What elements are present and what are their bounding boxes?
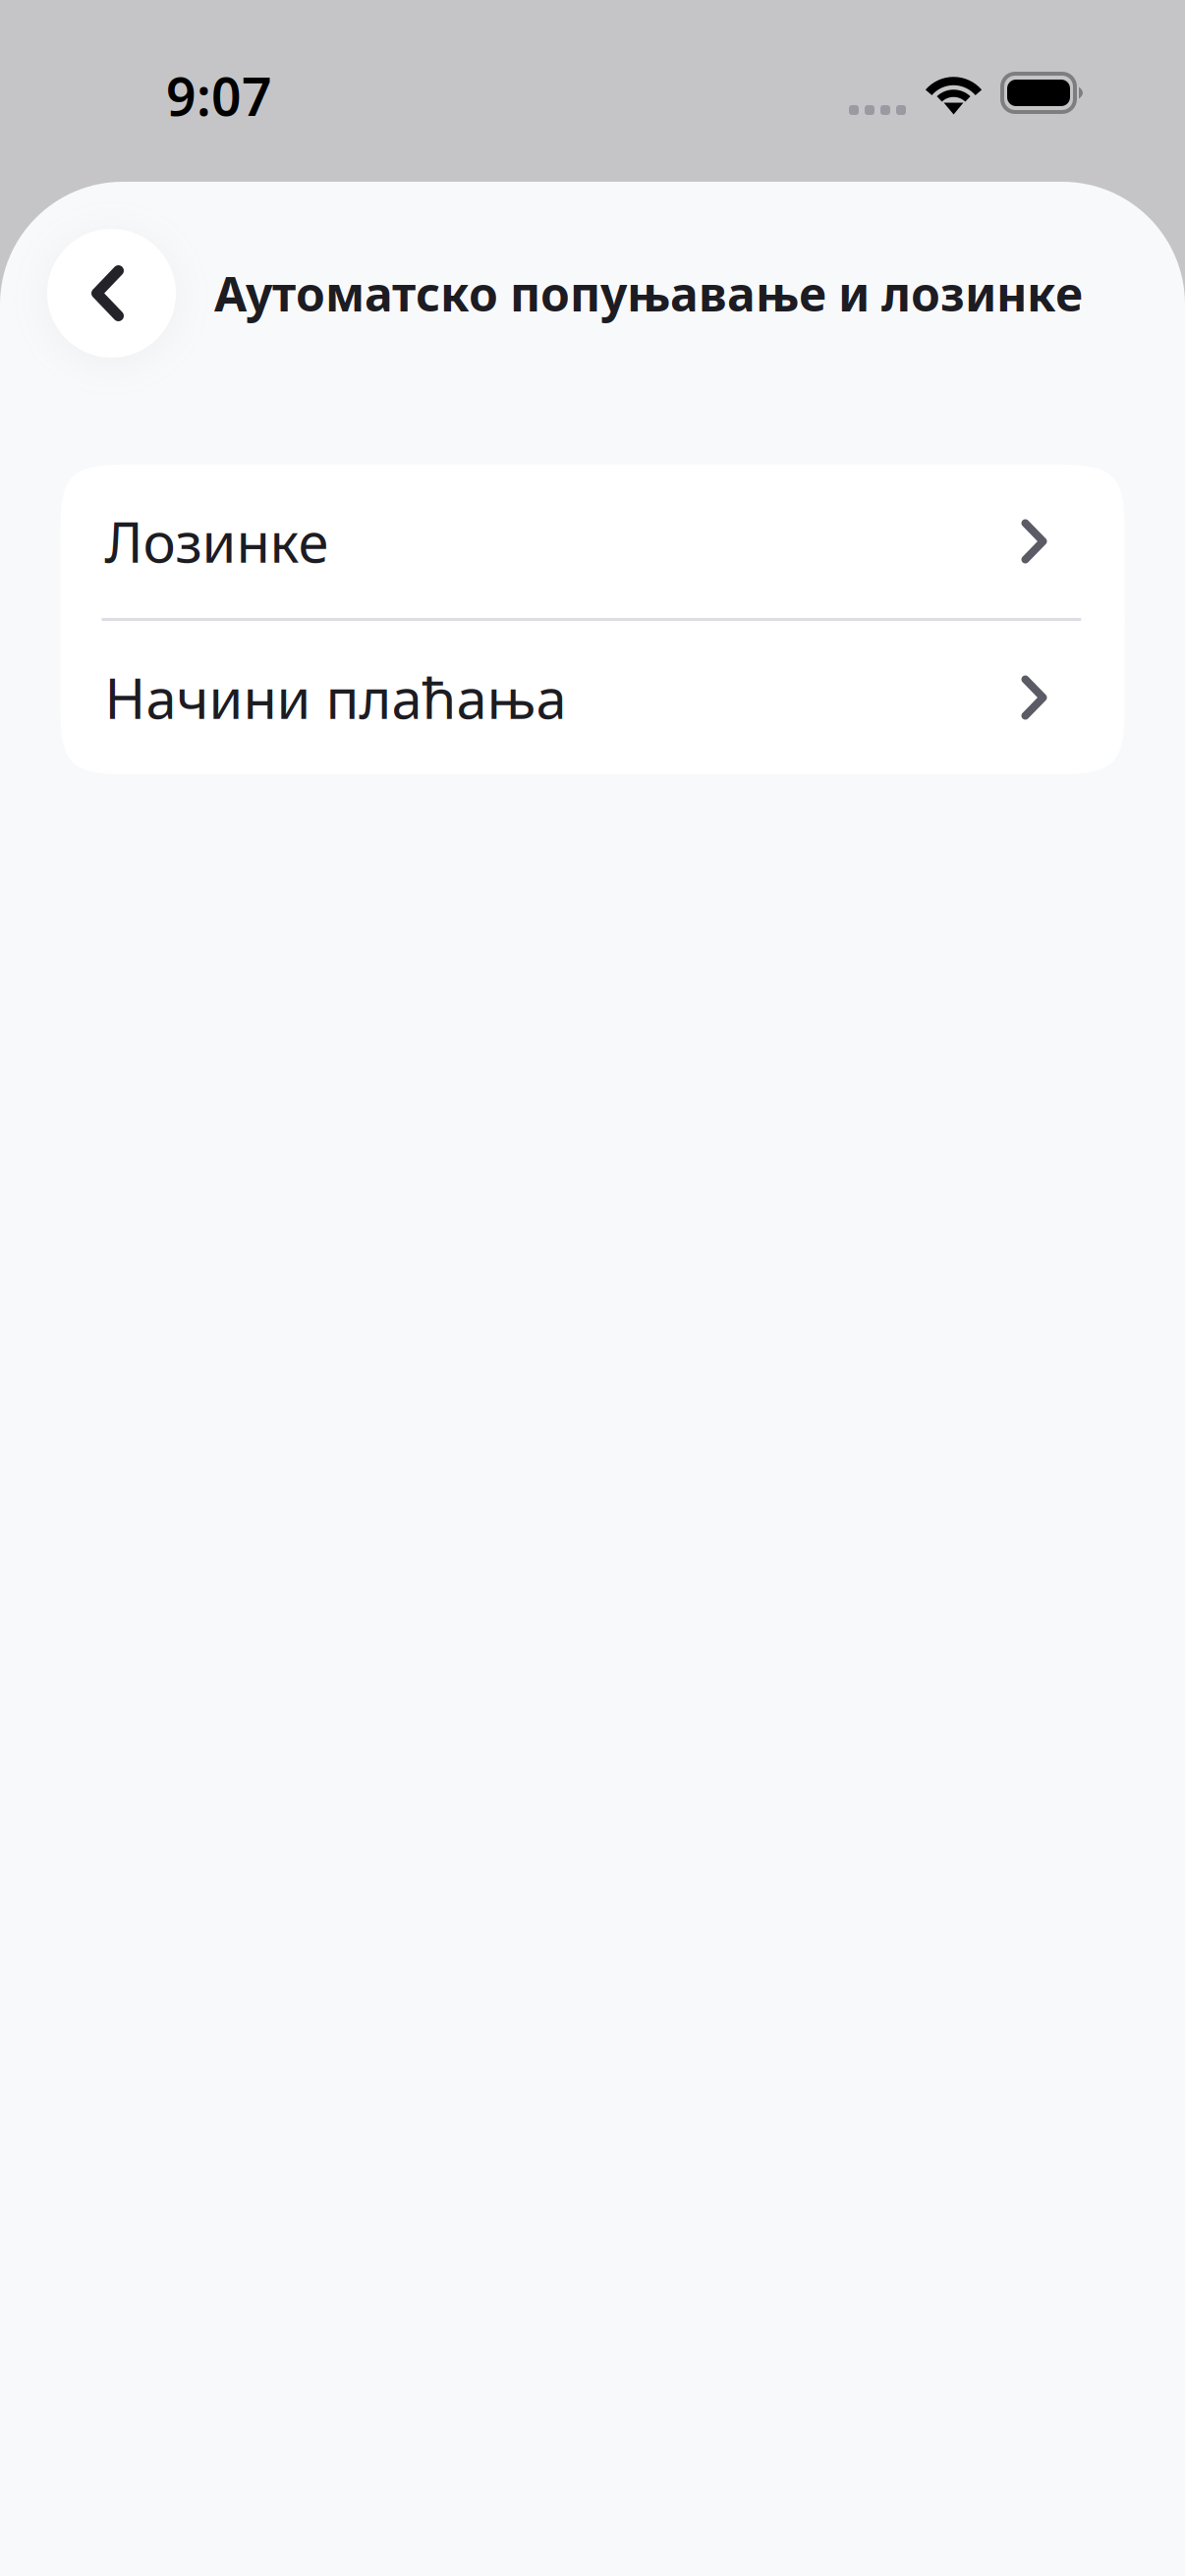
button[interactable]: Лозинке — [60, 465, 1125, 618]
staticText: Аутоматско попуњавање и лозинке — [214, 262, 1083, 325]
button[interactable]: Начини плаћања — [60, 621, 1125, 774]
button[interactable]: Назад — [47, 229, 176, 358]
staticText: Лозинке — [105, 505, 329, 578]
staticText: 9:07 — [166, 61, 272, 130]
staticText: Начини плаћања — [105, 661, 566, 734]
